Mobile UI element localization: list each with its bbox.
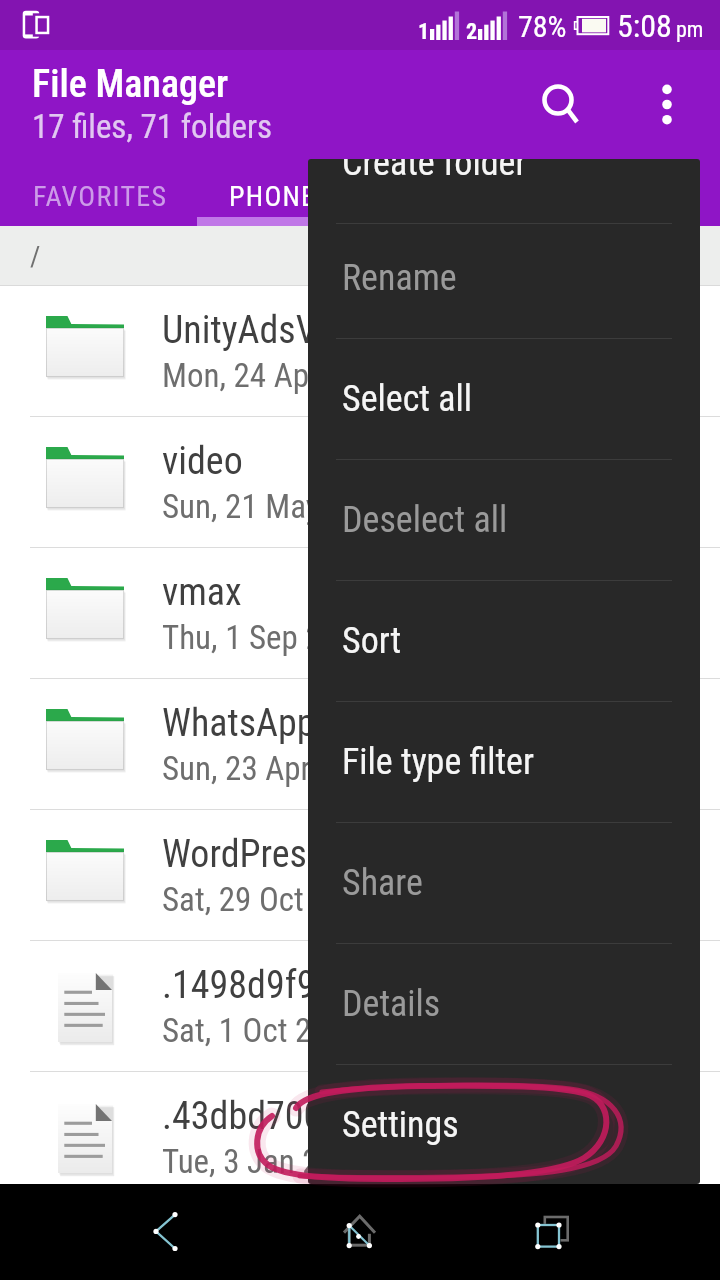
button[interactable]: Search [518, 60, 598, 140]
staticText: Mon, 24 Apr 2017 [162, 356, 392, 395]
button[interactable]: PHONE MEMORY [200, 166, 470, 226]
button[interactable]: WordPress [0, 810, 720, 941]
staticText: Sun, 21 May 2017 [162, 487, 393, 526]
button[interactable]: More options [627, 60, 707, 140]
button[interactable]: vmax [0, 548, 720, 679]
button[interactable]: Select all [308, 338, 700, 459]
staticText: 1 [418, 19, 430, 45]
staticText: Rename [342, 257, 457, 299]
staticText: FAVORITES [33, 180, 168, 213]
staticText: 17 files, 71 folders [32, 107, 273, 146]
staticText: Thu, 1 Sep 2016 [162, 618, 371, 657]
button[interactable]: File type filter [308, 701, 700, 822]
button[interactable]: Share [308, 822, 700, 943]
staticText: / [30, 240, 41, 273]
staticText: pm [676, 17, 704, 43]
staticText: .1498d9f9a8f3c6 [162, 963, 420, 1008]
button[interactable]: Settings [308, 1064, 700, 1184]
staticText: Sort [342, 620, 402, 662]
staticText: Deselect all [342, 499, 508, 541]
button[interactable]: .43dbd700a0f3e [0, 1072, 720, 1203]
staticText: File type filter [342, 741, 534, 783]
button[interactable]: video [0, 417, 720, 548]
button[interactable]: Create folder [308, 159, 700, 223]
button[interactable]: Rename [308, 217, 700, 338]
staticText: Settings [342, 1104, 459, 1146]
staticText: File Manager [32, 62, 229, 107]
button[interactable]: UnityAdsVideoCache [0, 286, 720, 417]
staticText: WordPress [162, 832, 325, 877]
staticText: 78% [518, 9, 567, 44]
staticText: Select all [342, 378, 472, 420]
staticText: vmax [162, 570, 242, 615]
button[interactable]: Sort [308, 580, 700, 701]
button[interactable]: Home [304, 1184, 416, 1280]
other: Multi window [16, 6, 60, 46]
staticText: Sat, 29 Oct 2016 [162, 880, 377, 919]
button[interactable]: Recents [495, 1184, 607, 1280]
staticText: PHONE MEMORY [229, 180, 434, 213]
button[interactable]: WhatsApp [0, 679, 720, 810]
staticText: 5:08 [617, 7, 672, 45]
staticText: Create folder [342, 159, 527, 184]
staticText: WhatsApp [162, 701, 316, 746]
staticText: UnityAdsVideoCache [162, 308, 475, 353]
button[interactable]: Details [308, 943, 700, 1064]
staticText: .43dbd700a0f3e [162, 1094, 408, 1139]
staticText: Tue, 3 Jan 2017 [162, 1142, 368, 1181]
staticText: Share [342, 862, 423, 904]
staticText: Sat, 1 Oct 2016 [162, 1011, 361, 1050]
staticText: Details [342, 983, 441, 1025]
button[interactable]: .1498d9f9a8f3c6 [0, 941, 720, 1072]
button[interactable]: FAVORITES [0, 166, 200, 226]
staticText: video [162, 439, 243, 484]
button[interactable]: Deselect all [308, 459, 700, 580]
staticText: 2 [466, 19, 478, 45]
staticText: Sun, 23 Apr 2017 [162, 749, 384, 788]
button[interactable]: Back [109, 1184, 221, 1280]
